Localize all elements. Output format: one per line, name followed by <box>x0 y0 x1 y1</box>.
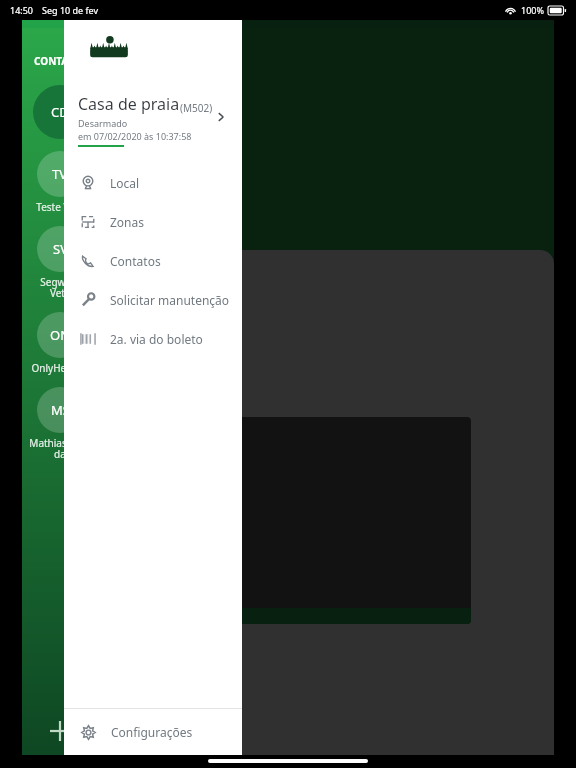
staticText: Local <box>110 175 140 191</box>
staticText: SV <box>53 240 68 258</box>
staticText: Mathias Silva da <box>29 436 91 461</box>
button[interactable]: SV <box>22 223 98 303</box>
staticText: Casa de praia <box>30 181 170 211</box>
button[interactable]: CD <box>22 82 98 142</box>
button[interactable]: Local <box>64 163 242 202</box>
button[interactable]: 2a. via do boleto <box>64 319 242 358</box>
staticText: CD <box>51 103 69 121</box>
button[interactable]: Solicitar manutenção <box>64 280 242 319</box>
staticText: Casa de praia <box>78 93 180 115</box>
staticText: Zonas <box>110 214 145 230</box>
button[interactable]: ON <box>22 309 98 378</box>
staticText: Configurações <box>111 724 193 740</box>
staticText: (M502) <box>180 87 214 115</box>
staticText: 2a. via do boleto <box>110 331 203 347</box>
staticText: Seg 10 de fev <box>42 4 99 16</box>
button[interactable]: Zonas <box>64 202 242 241</box>
staticText: MS <box>51 401 70 419</box>
button[interactable]: MS <box>22 384 98 464</box>
staticText: CD <box>61 120 91 150</box>
button[interactable]: TV <box>22 148 98 217</box>
button[interactable]: Adicionar conta <box>22 707 98 755</box>
staticText: CONTAS <box>34 54 74 68</box>
staticText: em 07/02/2020 às 10:37:58 <box>78 130 192 142</box>
staticText: 100% <box>521 4 544 16</box>
staticText: Solicitar manutenção <box>110 292 230 308</box>
button[interactable]: Casa de praia <box>64 87 242 147</box>
button[interactable]: Configurações <box>64 709 242 755</box>
staticText: ON <box>50 326 71 344</box>
button[interactable]: Pânico <box>44 653 96 705</box>
staticText: 14:50 <box>10 4 34 16</box>
button[interactable]: Contatos <box>64 241 242 280</box>
staticText: OnlyHelpME <box>31 361 90 375</box>
staticText: Desarmado <box>78 117 128 129</box>
staticText: em 07/02/2020 às 10:37:58 <box>30 243 169 258</box>
staticText: Teste Vetti <box>36 200 85 214</box>
staticText: Desarmado <box>56 219 117 234</box>
staticText: Contatos <box>110 253 161 269</box>
staticText: Segware Vetti <box>40 275 81 300</box>
staticText: TV <box>52 165 68 183</box>
